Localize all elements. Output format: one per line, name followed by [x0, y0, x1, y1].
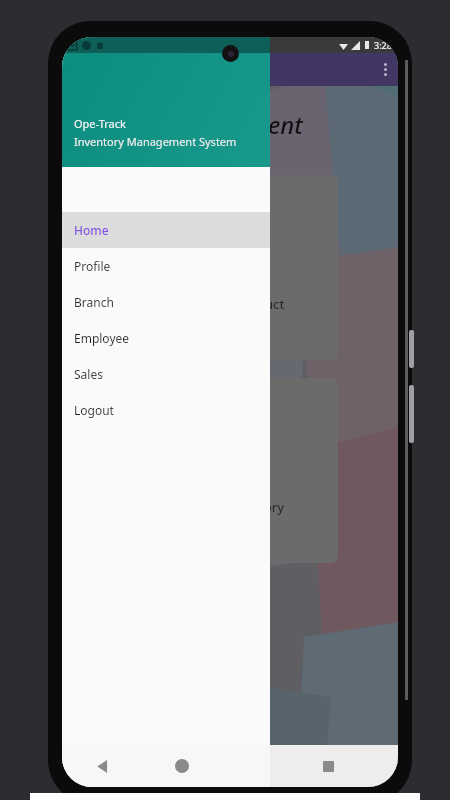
staticText: Branch: [74, 294, 114, 310]
staticText: Employee: [74, 330, 130, 346]
button[interactable]: Sales: [62, 356, 270, 392]
staticText: 3:28: [374, 39, 392, 51]
staticText: Management: [158, 108, 303, 141]
button[interactable]: Profile: [62, 248, 270, 284]
button[interactable]: View Inventory: [138, 378, 338, 563]
staticText: Ope-Track: [74, 116, 126, 131]
staticText: Inventory Management System: [74, 134, 237, 149]
staticText: View Inventory: [191, 498, 285, 516]
button[interactable]: Employee: [62, 320, 270, 356]
button[interactable]: Home: [62, 212, 270, 248]
button[interactable]: Back: [62, 745, 142, 787]
staticText: Home: [74, 222, 109, 238]
staticText: Sales: [74, 366, 103, 382]
staticText: Logout: [74, 402, 114, 418]
staticText: Profile: [74, 258, 111, 274]
staticText: Delete Product: [192, 295, 285, 313]
button[interactable]: Recents: [270, 745, 398, 787]
button[interactable]: Delete Product: [138, 175, 338, 360]
button[interactable]: More options: [372, 53, 398, 86]
button[interactable]: Logout: [62, 392, 270, 428]
button[interactable]: Home: [142, 745, 222, 787]
button[interactable]: Branch: [62, 284, 270, 320]
